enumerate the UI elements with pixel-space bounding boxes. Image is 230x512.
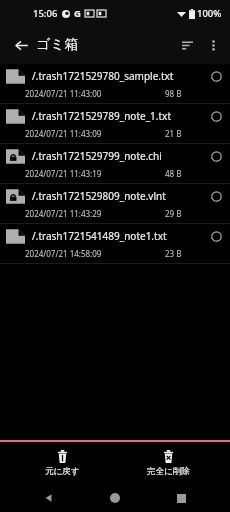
button[interactable]: Recents (164, 484, 198, 512)
staticText: 29 B (165, 208, 182, 219)
button[interactable]: /.trash1721529809_note.vlnt (0, 184, 230, 223)
button[interactable]: More options (200, 32, 226, 58)
button[interactable]: 元に戻す (17, 448, 107, 479)
staticText: /.trash1721529799_note.chi (32, 149, 162, 163)
staticText: /.trash1721529809_note.vlnt (32, 189, 166, 203)
staticText: 2024/07/21 11:43:00 (25, 88, 102, 99)
button[interactable]: /.trash1721529799_note.chi (0, 144, 230, 183)
button[interactable]: /.trash1721529789_note_1.txt (0, 104, 230, 143)
staticText: 2024/07/21 11:43:09 (25, 128, 102, 139)
staticText: 21 B (165, 128, 182, 139)
staticText: 15:06 (33, 7, 58, 20)
staticText: 完全に削除 (147, 466, 190, 477)
staticText: 48 B (165, 168, 182, 179)
staticText: ゴミ箱 (36, 36, 79, 54)
button[interactable]: Back (8, 32, 34, 58)
staticText: 2024/07/21 11:43:29 (25, 208, 102, 219)
staticText: 2024/07/21 11:43:19 (25, 168, 102, 179)
staticText: /.trash1721541489_note1.txt (32, 229, 167, 243)
staticText: 100% (197, 7, 222, 20)
staticText: 98 B (165, 88, 182, 99)
staticText: /.trash1721529789_note_1.txt (32, 109, 171, 123)
button[interactable]: Back (32, 484, 66, 512)
staticText: G (74, 7, 81, 20)
button[interactable]: Home (98, 484, 132, 512)
staticText: 23 B (165, 248, 182, 259)
staticText: /.trash1721529780_sample.txt (32, 69, 174, 83)
staticText: 元に戻す (45, 466, 80, 477)
button[interactable]: /.trash1721529780_sample.txt (0, 64, 230, 103)
button[interactable]: Sort (174, 32, 200, 58)
button[interactable]: /.trash1721541489_note1.txt (0, 224, 230, 263)
button[interactable]: 完全に削除 (123, 448, 213, 479)
staticText: 2024/07/21 14:58:09 (25, 248, 102, 259)
